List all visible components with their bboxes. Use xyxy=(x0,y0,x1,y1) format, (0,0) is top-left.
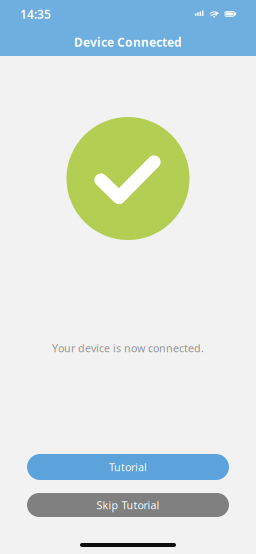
staticText: 14:35 xyxy=(20,6,51,22)
staticText: Skip Tutorial xyxy=(96,498,159,512)
staticText: Tutorial xyxy=(109,460,147,474)
button[interactable]: Skip Tutorial xyxy=(27,493,229,517)
staticText: Your device is now connected. xyxy=(52,341,204,355)
staticText: Device Connected xyxy=(74,34,182,50)
button[interactable]: Tutorial xyxy=(27,454,229,480)
